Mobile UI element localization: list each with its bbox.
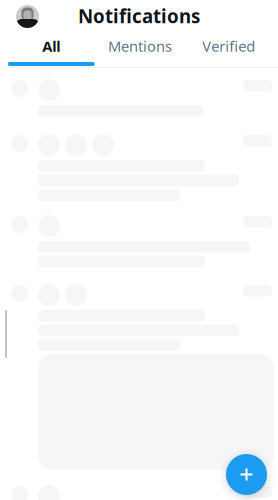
button[interactable]: Profile (16, 5, 39, 28)
button[interactable] (0, 134, 278, 210)
button[interactable] (0, 215, 278, 276)
staticText: Verified (202, 36, 255, 56)
staticText: All (42, 36, 60, 56)
staticText: Notifications (78, 4, 200, 28)
button[interactable]: Compose new post (226, 454, 267, 495)
button[interactable]: Mentions (96, 32, 184, 66)
button[interactable] (0, 79, 278, 125)
button[interactable] (0, 284, 278, 481)
button[interactable]: All (7, 32, 96, 66)
button[interactable] (0, 485, 278, 500)
staticText: Mentions (108, 36, 172, 56)
button[interactable]: Verified (184, 32, 273, 66)
